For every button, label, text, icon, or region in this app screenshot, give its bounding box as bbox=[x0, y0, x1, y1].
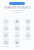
staticText: Teams bbox=[25, 32, 30, 33]
button[interactable]: Support bbox=[0, 40, 11, 47]
staticText: Reports bbox=[25, 39, 31, 40]
button[interactable]: Teams bbox=[22, 26, 33, 33]
staticText: Tools your team needs bbox=[9, 10, 25, 11]
button[interactable]: Settings bbox=[11, 40, 22, 47]
button[interactable]: Backup bbox=[0, 33, 11, 40]
button[interactable]: Reports bbox=[22, 33, 33, 40]
button[interactable]: Alerts bbox=[11, 26, 22, 33]
staticText: Backup bbox=[3, 39, 9, 40]
button[interactable]: Sync bbox=[22, 19, 33, 26]
staticText: Sync bbox=[26, 25, 30, 26]
button[interactable]: Export bbox=[11, 33, 22, 40]
button[interactable]: Fast bbox=[0, 19, 11, 26]
staticText: Alerts bbox=[15, 32, 19, 33]
staticText: Support bbox=[3, 46, 9, 47]
staticText: Settings bbox=[14, 46, 19, 47]
staticText: Export bbox=[14, 39, 19, 40]
button[interactable]: Secure bbox=[11, 19, 22, 26]
staticText: to ship faster bbox=[13, 12, 21, 13]
button[interactable]: Search bbox=[0, 26, 11, 33]
button[interactable]: New bbox=[9, 2, 25, 5]
staticText: Powerful features bbox=[4, 6, 30, 9]
staticText: Fast bbox=[4, 25, 7, 26]
